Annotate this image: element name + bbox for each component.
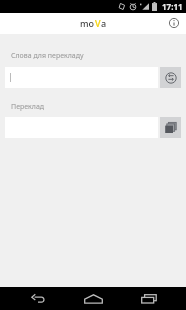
button[interactable]: Info <box>167 16 181 30</box>
staticText: 17:11 <box>162 1 183 12</box>
staticText: Слова для перекладу <box>11 51 84 61</box>
button[interactable]: Swap languages <box>160 67 181 88</box>
staticText: V <box>95 17 101 29</box>
button[interactable]: Back <box>14 287 61 310</box>
staticText: mo <box>80 17 95 29</box>
button[interactable]: Home <box>70 287 117 310</box>
staticText: a <box>101 17 107 29</box>
button[interactable]: Recents <box>125 287 172 310</box>
button[interactable]: Copy translation <box>160 117 181 138</box>
staticText: Переклад <box>11 102 45 112</box>
button[interactable] <box>5 67 158 88</box>
